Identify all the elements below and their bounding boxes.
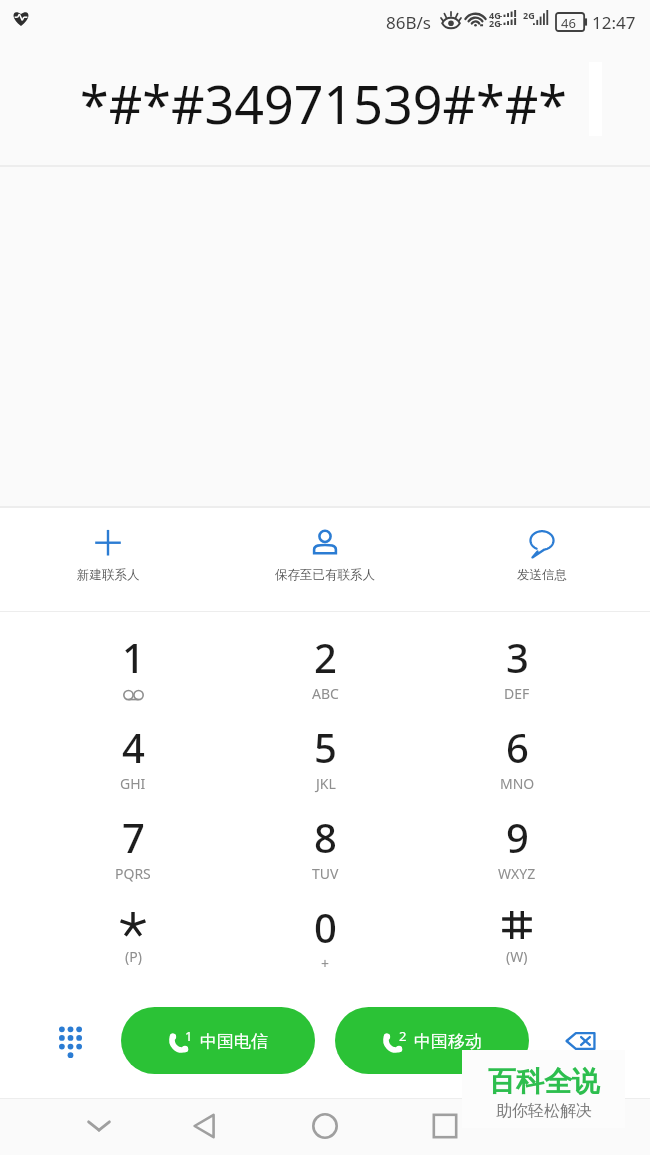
button[interactable]: Recent apps (417, 1098, 473, 1154)
staticText: DEF (504, 684, 530, 703)
staticText: 9 (506, 810, 529, 864)
button[interactable]: 1 (37, 630, 229, 720)
staticText: *#*#34971539#*#* (80, 68, 567, 139)
staticText: 7 (122, 810, 145, 864)
staticText: 发送信息 (517, 567, 567, 583)
staticText: 1 (122, 630, 145, 684)
button[interactable]: 2 (335, 1007, 529, 1074)
button[interactable]: (W) (421, 900, 613, 990)
staticText: 2G (523, 9, 535, 21)
button[interactable]: 0 (229, 900, 421, 990)
button[interactable]: Backspace (552, 1013, 608, 1069)
button[interactable]: 发送信息 (433, 508, 650, 611)
button[interactable]: (P) (37, 900, 229, 990)
staticText: (W) (506, 947, 528, 966)
staticText: 12:47 (592, 11, 636, 34)
button[interactable]: 保存至已有联系人 (216, 508, 433, 611)
staticText: 中国电信 (200, 1031, 268, 1052)
staticText: 百科全说 (488, 1064, 600, 1099)
button[interactable]: 新建联系人 (0, 508, 216, 611)
button[interactable]: 5 (229, 720, 421, 810)
button[interactable]: Show dialpad (42, 1012, 98, 1068)
staticText: 0 (314, 900, 337, 954)
button[interactable]: 7 (37, 810, 229, 900)
staticText: 1 (185, 1027, 193, 1045)
staticText: 2G (489, 17, 501, 29)
staticText: + (321, 954, 330, 973)
button[interactable]: 2 (229, 630, 421, 720)
staticText: 2 (314, 630, 337, 684)
staticText: 2 (399, 1027, 407, 1045)
staticText: PQRS (115, 864, 151, 883)
staticText: 5 (314, 720, 337, 774)
staticText: TUV (312, 864, 339, 883)
staticText: 8 (314, 810, 337, 864)
staticText: 中国移动 (414, 1031, 482, 1052)
staticText: (P) (125, 947, 142, 966)
button[interactable]: Home (297, 1098, 353, 1154)
staticText: MNO (500, 774, 535, 793)
staticText: JKL (316, 774, 336, 793)
staticText: 新建联系人 (77, 567, 140, 583)
staticText: 4G (489, 9, 501, 21)
staticText: 3 (506, 630, 529, 684)
button[interactable]: Back (177, 1098, 233, 1154)
staticText: 46 (561, 14, 576, 32)
button[interactable]: 1 (121, 1007, 315, 1074)
staticText: GHI (120, 774, 146, 793)
staticText: 助你轻松解决 (496, 1101, 592, 1121)
button[interactable]: 8 (229, 810, 421, 900)
button[interactable]: 4 (37, 720, 229, 810)
staticText: ABC (312, 684, 339, 703)
button[interactable]: 6 (421, 720, 613, 810)
staticText: 保存至已有联系人 (275, 567, 375, 583)
button[interactable]: 3 (421, 630, 613, 720)
staticText: 86B/s (386, 11, 431, 34)
staticText: WXYZ (498, 864, 536, 883)
staticText: 6 (506, 720, 529, 774)
staticText: 4 (122, 720, 145, 774)
button[interactable]: 9 (421, 810, 613, 900)
button[interactable]: Hide keypad (71, 1098, 127, 1154)
